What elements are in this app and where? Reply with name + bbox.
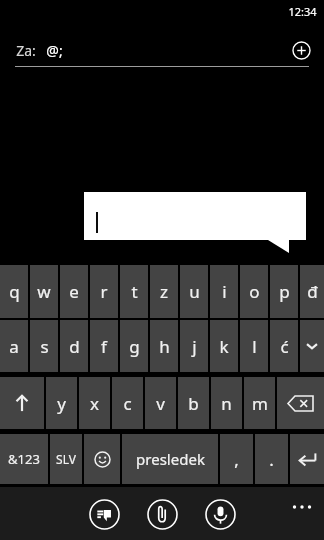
staticText: z bbox=[160, 280, 168, 303]
button[interactable]: More letters bbox=[300, 320, 324, 372]
button[interactable]: , bbox=[220, 434, 253, 484]
staticText: , bbox=[234, 448, 239, 471]
button[interactable]: u bbox=[180, 265, 208, 318]
button[interactable]: SLV bbox=[50, 434, 82, 484]
staticText: o bbox=[249, 280, 260, 303]
button[interactable]: c bbox=[112, 377, 143, 429]
button[interactable]: Send message bbox=[86, 496, 122, 532]
staticText: presledek bbox=[136, 449, 205, 469]
staticText: d bbox=[69, 335, 80, 358]
staticText: . bbox=[269, 448, 274, 471]
button[interactable]: a bbox=[0, 320, 28, 372]
button[interactable]: Message text field bbox=[84, 192, 306, 253]
button[interactable]: w bbox=[30, 265, 58, 318]
staticText: w bbox=[37, 280, 51, 303]
staticText: l bbox=[252, 335, 257, 358]
button[interactable]: l bbox=[240, 320, 268, 372]
button[interactable]: Backspace bbox=[277, 377, 324, 429]
staticText: m bbox=[252, 392, 268, 415]
staticText: c bbox=[123, 392, 132, 415]
button[interactable]: k bbox=[210, 320, 238, 372]
button[interactable]: Shift bbox=[0, 377, 44, 429]
button[interactable]: h bbox=[150, 320, 178, 372]
staticText: ć bbox=[280, 335, 289, 358]
button[interactable]: m bbox=[244, 377, 275, 429]
button[interactable]: Add recipient bbox=[288, 37, 314, 63]
staticText: r bbox=[100, 280, 108, 303]
staticText: y bbox=[57, 392, 66, 415]
button[interactable]: t bbox=[120, 265, 148, 318]
button[interactable]: . bbox=[255, 434, 288, 484]
staticText: 12:34 bbox=[288, 4, 317, 19]
button[interactable]: o bbox=[240, 265, 268, 318]
button[interactable]: g bbox=[120, 320, 148, 372]
staticText: i bbox=[222, 280, 227, 303]
button[interactable]: p bbox=[270, 265, 298, 318]
button[interactable]: i bbox=[210, 265, 238, 318]
staticText: Za: bbox=[16, 41, 36, 60]
button[interactable]: n bbox=[211, 377, 242, 429]
staticText: u bbox=[189, 280, 200, 303]
button[interactable]: q bbox=[0, 265, 28, 318]
staticText: t bbox=[131, 280, 138, 303]
staticText: n bbox=[221, 392, 232, 415]
staticText: e bbox=[69, 280, 79, 303]
button[interactable]: s bbox=[30, 320, 58, 372]
staticText: j bbox=[192, 335, 197, 358]
button[interactable]: ć bbox=[270, 320, 298, 372]
staticText: đ bbox=[307, 280, 318, 303]
staticText: q bbox=[9, 280, 20, 303]
staticText: p bbox=[279, 280, 290, 303]
staticText: @; bbox=[46, 41, 63, 60]
staticText: SLV bbox=[56, 451, 76, 467]
button[interactable]: y bbox=[46, 377, 77, 429]
button[interactable]: j bbox=[180, 320, 208, 372]
button[interactable]: Voice input bbox=[202, 496, 238, 532]
staticText: f bbox=[101, 335, 107, 358]
button[interactable]: e bbox=[60, 265, 88, 318]
button[interactable]: presledek bbox=[122, 434, 218, 484]
button[interactable]: Emoji bbox=[84, 434, 120, 484]
button[interactable]: Enter bbox=[290, 434, 324, 484]
staticText: k bbox=[219, 335, 229, 358]
staticText: s bbox=[40, 335, 49, 358]
staticText: b bbox=[188, 392, 199, 415]
button[interactable]: đ bbox=[300, 265, 324, 318]
staticText: h bbox=[159, 335, 170, 358]
staticText: v bbox=[156, 392, 165, 415]
button[interactable]: x bbox=[79, 377, 110, 429]
staticText: g bbox=[129, 335, 140, 358]
button[interactable]: More options bbox=[288, 493, 316, 521]
button[interactable]: f bbox=[90, 320, 118, 372]
staticText: x bbox=[90, 392, 99, 415]
button[interactable]: d bbox=[60, 320, 88, 372]
staticText: a bbox=[9, 335, 19, 358]
button[interactable]: r bbox=[90, 265, 118, 318]
button[interactable]: Attach bbox=[144, 496, 180, 532]
staticText: &123 bbox=[8, 450, 40, 468]
button[interactable]: b bbox=[178, 377, 209, 429]
button[interactable]: &123 bbox=[0, 434, 48, 484]
button[interactable]: z bbox=[150, 265, 178, 318]
button[interactable]: v bbox=[145, 377, 176, 429]
